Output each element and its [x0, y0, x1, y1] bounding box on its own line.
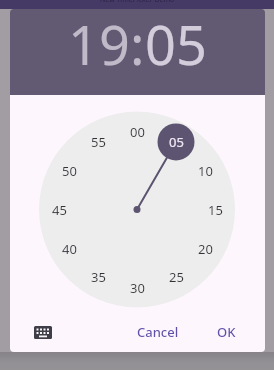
staticText: 00	[130, 123, 145, 141]
staticText: OK	[217, 323, 236, 341]
button[interactable]: 50	[55, 161, 83, 181]
button[interactable]: 05	[162, 132, 190, 152]
staticText: 15	[208, 201, 223, 219]
button[interactable]: 00	[123, 122, 151, 142]
staticText: 45	[52, 201, 67, 219]
button[interactable]: 20	[191, 239, 219, 259]
button[interactable]: 10	[191, 161, 219, 181]
staticText: 10	[198, 162, 213, 180]
staticText: 40	[62, 240, 77, 258]
staticText: :	[130, 9, 145, 81]
staticText: 50	[62, 162, 77, 180]
button[interactable]: 25	[162, 267, 190, 287]
button[interactable]: 55	[84, 132, 112, 152]
staticText: 30	[130, 279, 145, 297]
button[interactable]: 35	[84, 267, 112, 287]
button[interactable]: OK	[208, 317, 244, 347]
button[interactable]: 45	[45, 200, 73, 220]
staticText: 05	[169, 133, 184, 151]
button[interactable]: Cancel	[132, 317, 184, 347]
staticText: New TimePicker Demo	[100, 0, 175, 4]
button[interactable]: 19	[68, 9, 130, 81]
button[interactable]: 40	[55, 239, 83, 259]
button[interactable]: 15	[201, 200, 229, 220]
staticText: Cancel	[137, 323, 179, 341]
staticText: 25	[169, 268, 184, 286]
button[interactable]: 30	[123, 278, 151, 298]
staticText: 35	[91, 268, 106, 286]
staticText: 55	[91, 133, 106, 151]
button[interactable]	[26, 319, 60, 345]
staticText: 20	[198, 240, 213, 258]
button[interactable]: 05	[145, 9, 207, 81]
